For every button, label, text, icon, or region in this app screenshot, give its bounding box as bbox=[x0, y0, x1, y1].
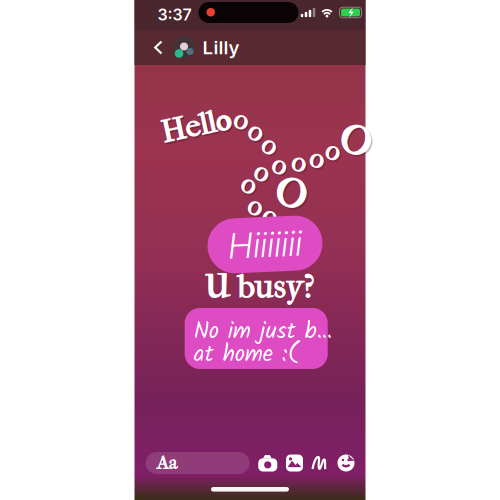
button[interactable]: Lilly bbox=[172, 30, 239, 65]
staticText: o bbox=[292, 145, 307, 179]
button[interactable]: Aa bbox=[145, 452, 249, 474]
staticText: o bbox=[256, 157, 271, 191]
staticText: O bbox=[276, 172, 308, 219]
staticText: Aa bbox=[156, 452, 177, 474]
staticText: O bbox=[275, 171, 307, 218]
button[interactable]: Stickers bbox=[337, 454, 354, 471]
staticText: o bbox=[234, 103, 249, 137]
staticText: o bbox=[249, 191, 264, 225]
staticText: o bbox=[311, 143, 326, 177]
staticText: o bbox=[249, 115, 264, 149]
button[interactable]: Photo library bbox=[286, 454, 303, 471]
staticText: Hiiiiiii bbox=[228, 223, 302, 265]
staticText: o bbox=[274, 150, 289, 184]
staticText: o bbox=[263, 199, 278, 233]
staticText: Hello bbox=[162, 110, 232, 145]
staticText: o bbox=[255, 155, 270, 189]
staticText: o bbox=[264, 200, 279, 235]
staticText: o bbox=[215, 104, 230, 138]
staticText: o bbox=[263, 128, 278, 162]
button[interactable]: Camera bbox=[258, 454, 277, 471]
staticText: o bbox=[250, 116, 265, 150]
button[interactable]: Draw bbox=[312, 454, 329, 471]
staticText: 3:37 bbox=[157, 5, 191, 24]
staticText: o bbox=[310, 141, 325, 176]
staticText: o bbox=[264, 130, 279, 164]
staticText: o bbox=[326, 134, 341, 168]
staticText: o bbox=[243, 169, 258, 203]
staticText: o bbox=[235, 104, 250, 139]
staticText: o bbox=[217, 106, 232, 140]
staticText: Hello bbox=[160, 108, 230, 144]
staticText: o bbox=[327, 135, 342, 170]
staticText: o bbox=[293, 147, 308, 181]
staticText: o bbox=[242, 167, 257, 202]
staticText: at home :( bbox=[194, 337, 299, 373]
staticText: o bbox=[248, 189, 263, 223]
staticText: Lilly bbox=[202, 36, 239, 59]
staticText: O bbox=[341, 120, 373, 166]
staticText: No im just bored bbox=[194, 314, 337, 350]
button[interactable]: Back bbox=[144, 30, 172, 65]
staticText: U busy? bbox=[204, 267, 314, 306]
staticText: O bbox=[339, 118, 371, 165]
staticText: o bbox=[272, 148, 287, 182]
